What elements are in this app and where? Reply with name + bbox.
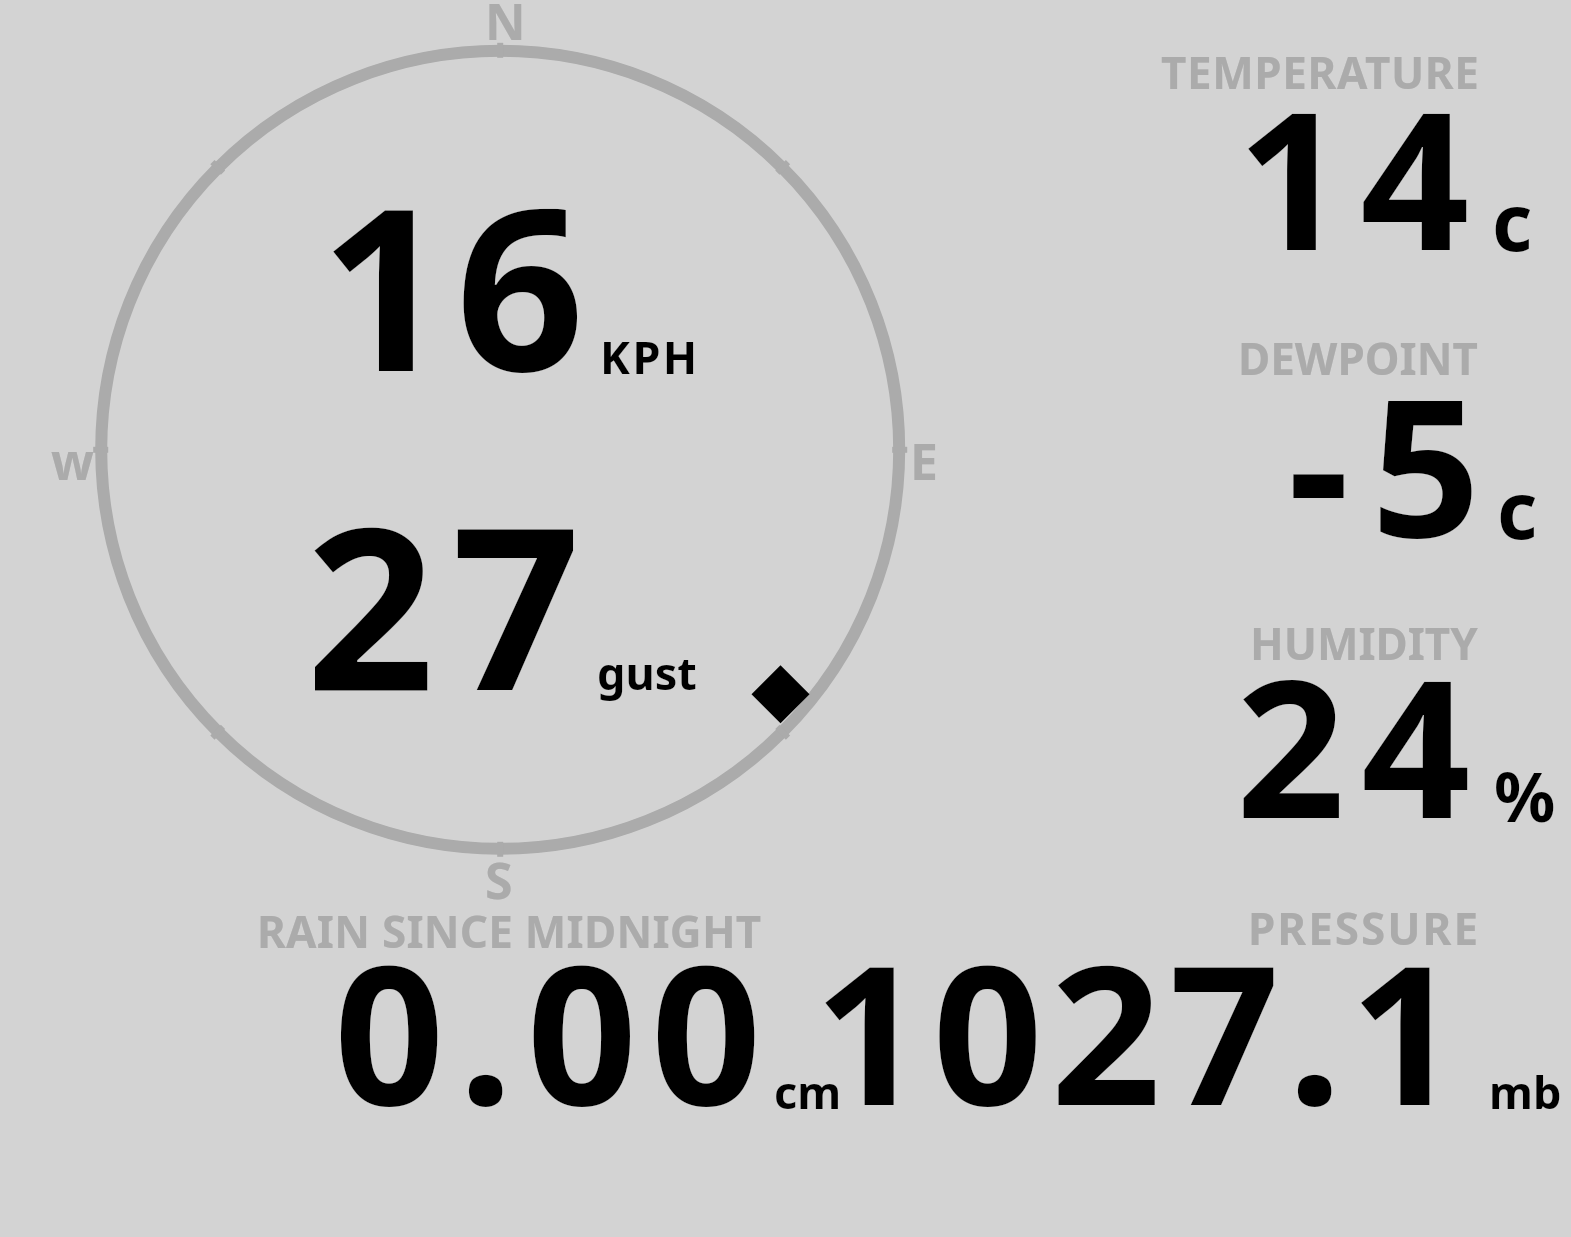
staticText: 16: [320, 130, 592, 436]
staticText: 0.00: [334, 899, 776, 1162]
staticText: 24: [1236, 614, 1487, 874]
staticText: cm: [774, 1061, 842, 1122]
staticText: S: [485, 846, 513, 914]
button[interactable]: Pressure 1027.1 mb: [1150, 900, 1571, 1130]
staticText: TEMPERATURE: [1161, 42, 1480, 102]
staticText: c: [1492, 168, 1533, 274]
staticText: %: [1494, 749, 1556, 842]
staticText: PRESSURE: [1248, 898, 1481, 958]
staticText: w: [51, 427, 94, 495]
staticText: -5: [1288, 333, 1503, 593]
staticText: 1027.1: [814, 899, 1469, 1162]
staticText: HUMIDITY: [1250, 613, 1478, 673]
staticText: 27: [306, 449, 598, 755]
staticText: DEWPOINT: [1238, 328, 1478, 388]
staticText: KPH: [600, 326, 700, 387]
staticText: E: [910, 427, 938, 495]
staticText: mb: [1489, 1061, 1562, 1122]
button[interactable]: Rain since midnight 0.00 cm: [250, 900, 850, 1130]
button[interactable]: Dewpoint -5 C: [1150, 330, 1571, 590]
button[interactable]: Humidity 24 percent: [1150, 610, 1571, 860]
staticText: c: [1497, 456, 1538, 562]
staticText: 14: [1237, 46, 1484, 306]
staticText: RAIN SINCE MIDNIGHT: [257, 901, 762, 961]
staticText: N: [485, 0, 526, 55]
staticText: gust: [597, 642, 697, 703]
button[interactable]: Temperature 14 C: [1150, 40, 1571, 300]
button[interactable]: Wind speed 16 KPH, gust 27: [90, 35, 915, 865]
